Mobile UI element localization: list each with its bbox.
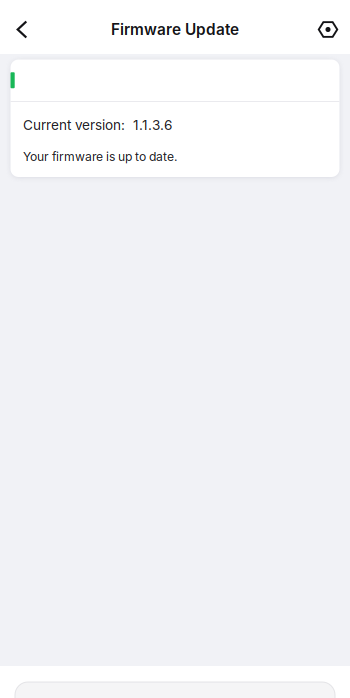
staticText: Your firmware is up to date. — [23, 149, 177, 164]
button[interactable]: Device settings — [306, 0, 350, 54]
button[interactable]: Back — [0, 0, 44, 54]
staticText: Current version: 1.1.3.6 — [23, 117, 172, 133]
staticText: Firmware Update — [111, 20, 239, 39]
